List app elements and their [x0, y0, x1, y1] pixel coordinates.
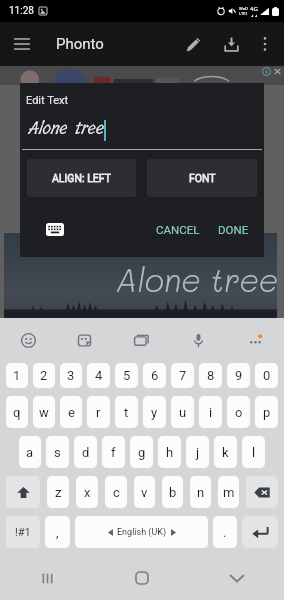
button[interactable]: 2	[33, 363, 55, 388]
button[interactable]: w	[33, 396, 55, 428]
button[interactable]: 4	[87, 363, 110, 388]
button[interactable]: Shift	[6, 476, 40, 508]
button[interactable]: i	[199, 396, 222, 428]
staticText: Alone tree	[28, 114, 104, 142]
staticText: l	[252, 445, 256, 460]
button[interactable]: 7	[171, 363, 194, 388]
button[interactable]: l	[242, 436, 265, 468]
button[interactable]: e	[60, 396, 82, 428]
staticText: 4	[95, 368, 103, 383]
button[interactable]: h	[158, 436, 181, 468]
button[interactable]: .	[213, 516, 237, 548]
button[interactable]: u	[171, 396, 194, 428]
staticText: Edit Text	[26, 94, 69, 107]
button[interactable]: More options	[250, 22, 280, 66]
button[interactable]: a	[19, 436, 41, 468]
button[interactable]: k	[214, 436, 237, 468]
button[interactable]: 3	[60, 363, 82, 388]
button[interactable]: English (UK)	[75, 516, 208, 548]
button[interactable]: ALIGN: LEFT	[27, 159, 136, 197]
button[interactable]: Show keyboard	[43, 215, 67, 243]
button[interactable]: t	[115, 396, 138, 428]
staticText: English (UK)	[117, 527, 167, 538]
staticText: u	[179, 405, 187, 420]
button[interactable]: p	[255, 396, 278, 428]
button[interactable]: DONE	[214, 217, 253, 242]
button[interactable]: 6	[143, 363, 166, 388]
button[interactable]: x	[76, 476, 98, 508]
button[interactable]: z	[47, 476, 69, 508]
staticText: p	[263, 405, 271, 420]
staticText: .	[223, 525, 227, 540]
button[interactable]: Back	[189, 556, 284, 600]
staticText: k	[222, 445, 229, 460]
button[interactable]: More	[227, 318, 284, 363]
button[interactable]: Ad info	[262, 67, 271, 76]
button[interactable]: j	[186, 436, 209, 468]
button[interactable]: d	[74, 436, 97, 468]
staticText: d	[82, 445, 90, 460]
button[interactable]: g	[130, 436, 153, 468]
button[interactable]: Enter	[242, 516, 278, 548]
button[interactable]: FONT	[147, 159, 257, 197]
button[interactable]: s	[46, 436, 69, 468]
button[interactable]: Close ad	[273, 67, 282, 76]
staticText: i	[209, 405, 213, 420]
button[interactable]: q	[6, 396, 28, 428]
button[interactable]: Emoji	[0, 318, 56, 363]
button[interactable]: v	[134, 476, 155, 508]
staticText: m	[223, 485, 235, 500]
button[interactable]: r	[87, 396, 110, 428]
button[interactable]: Clipboard	[113, 318, 170, 363]
staticText: b	[169, 485, 177, 500]
button[interactable]: m	[218, 476, 239, 508]
staticText: !#1	[15, 526, 31, 539]
button[interactable]: y	[143, 396, 166, 428]
button[interactable]: 5	[115, 363, 138, 388]
button[interactable]: Stickers	[56, 318, 113, 363]
button[interactable]: Edit	[174, 22, 212, 66]
staticText: ALIGN: LEFT	[52, 172, 111, 184]
staticText: ,	[56, 525, 59, 540]
staticText: 3	[67, 368, 75, 383]
button[interactable]: o	[227, 396, 250, 428]
button[interactable]: n	[190, 476, 211, 508]
button[interactable]: Voice input	[170, 318, 227, 363]
button[interactable]: Navigation menu	[0, 22, 44, 66]
button[interactable]: !#1	[6, 516, 40, 548]
staticText: h	[166, 445, 174, 460]
button[interactable]: f	[102, 436, 125, 468]
staticText: n	[197, 485, 205, 500]
staticText: FONT	[189, 172, 216, 184]
staticText: y	[151, 405, 158, 420]
staticText: 9	[235, 368, 243, 383]
staticText: x	[84, 485, 91, 500]
staticText: f	[111, 445, 116, 460]
staticText: 8	[207, 368, 215, 383]
staticText: q	[13, 405, 21, 420]
staticText: 6	[151, 368, 159, 383]
button[interactable]: 0	[255, 363, 278, 388]
button[interactable]: Backspace	[246, 476, 278, 508]
button[interactable]: CANCEL	[152, 217, 204, 242]
button[interactable]: 9	[227, 363, 250, 388]
staticText: 0	[263, 368, 271, 383]
button[interactable]: Home	[94, 556, 189, 600]
staticText: 5	[123, 368, 131, 383]
staticText: z	[55, 485, 62, 500]
button[interactable]: Recent apps	[0, 556, 94, 600]
staticText: w	[39, 405, 49, 420]
staticText: 11:28	[9, 5, 34, 17]
staticText: Phonto	[56, 35, 104, 53]
button[interactable]: ,	[45, 516, 70, 548]
button[interactable]: c	[105, 476, 127, 508]
staticText: a	[26, 445, 34, 460]
button[interactable]: 1	[6, 363, 28, 388]
staticText: t	[124, 405, 129, 420]
button[interactable]: Save image	[212, 22, 250, 66]
staticText: Wo̷D	[239, 6, 248, 11]
button[interactable]: b	[162, 476, 183, 508]
staticText: LTE1	[239, 11, 248, 16]
staticText: 7	[179, 368, 187, 383]
button[interactable]: 8	[199, 363, 222, 388]
